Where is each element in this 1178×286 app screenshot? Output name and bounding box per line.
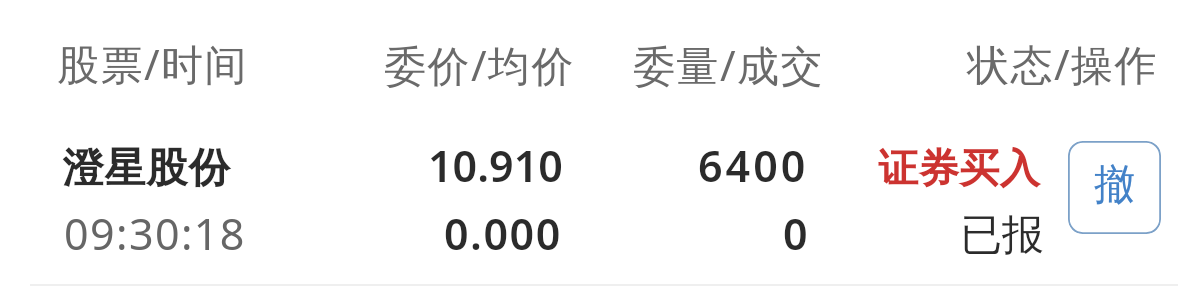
- staticText: 已报: [960, 209, 1044, 262]
- staticText: 0: [783, 204, 810, 263]
- button[interactable]: 撤单: [1068, 141, 1161, 234]
- staticText: 证券买入: [878, 143, 1040, 193]
- staticText: 状态/操作: [967, 35, 1159, 92]
- staticText: 股票/时间: [57, 35, 249, 92]
- staticText: 6400: [698, 136, 809, 195]
- button[interactable]: 列表表头: [0, 0, 1178, 110]
- staticText: 委价/均价: [384, 36, 576, 93]
- staticText: 撤: [1094, 159, 1135, 211]
- staticText: 澄星股份: [62, 143, 230, 195]
- staticText: 委量/成交: [633, 36, 825, 93]
- staticText: 09:30:18: [64, 204, 246, 263]
- staticText: 0.000: [444, 204, 562, 263]
- button[interactable]: 澄星股份: [0, 110, 1178, 284]
- staticText: 10.910: [428, 136, 563, 195]
